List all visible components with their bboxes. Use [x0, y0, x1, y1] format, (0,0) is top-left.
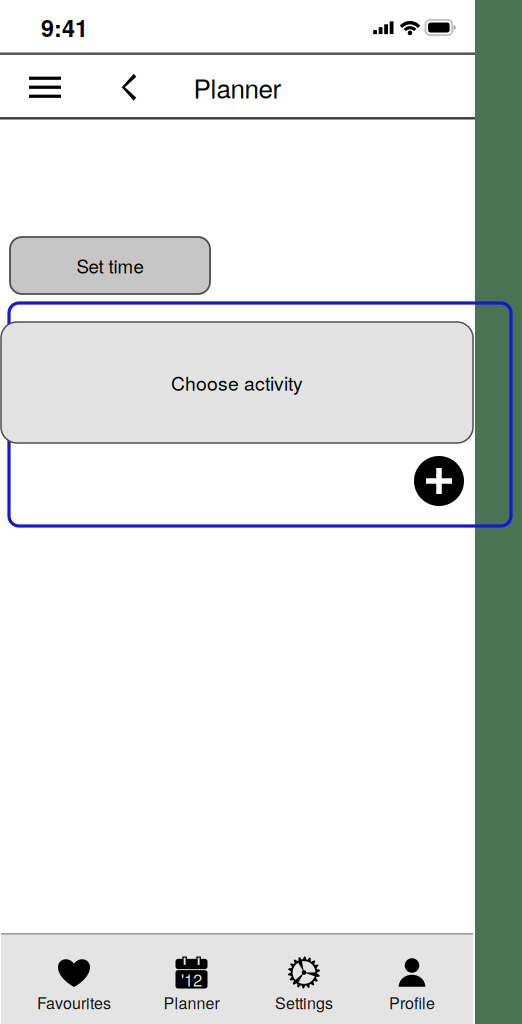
button[interactable]: Back	[103, 55, 155, 119]
button[interactable]: Profile	[356, 933, 468, 1024]
staticText: 9:41	[41, 11, 88, 44]
button[interactable]: Add	[414, 456, 464, 506]
staticText: '12	[181, 967, 202, 991]
staticText: Planner	[193, 69, 281, 106]
button[interactable]: Menu	[16, 55, 74, 119]
staticText: Set time	[76, 252, 143, 279]
staticText: Settings	[275, 991, 333, 1014]
button[interactable]: Choose activity	[1, 322, 473, 443]
staticText: Profile	[389, 991, 435, 1014]
button[interactable]: Set time	[10, 237, 210, 294]
button[interactable]: '12	[135, 933, 248, 1024]
button[interactable]: Settings	[248, 933, 360, 1024]
staticText: Favourites	[37, 991, 111, 1014]
staticText: Choose activity	[171, 369, 303, 396]
staticText: Planner	[163, 991, 219, 1014]
button[interactable]: Favourites	[18, 933, 130, 1024]
